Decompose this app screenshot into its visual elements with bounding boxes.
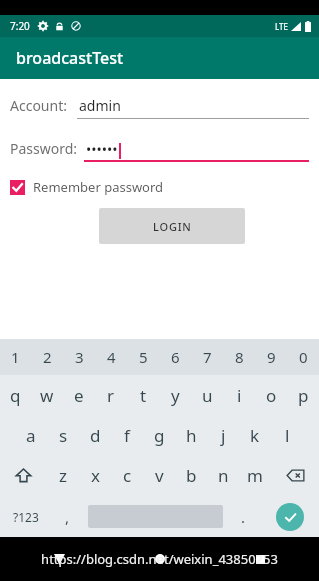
button[interactable]: , [51, 496, 84, 537]
staticText: p [298, 384, 309, 407]
staticText: i [237, 384, 242, 407]
button[interactable]: d [79, 415, 111, 455]
staticText: h [186, 424, 197, 447]
staticText: 7:20 [10, 19, 30, 33]
button[interactable]: b [175, 455, 207, 496]
button[interactable]: 8 [223, 339, 255, 375]
button[interactable]: h [175, 415, 207, 455]
staticText: a [26, 424, 36, 447]
staticText: g [154, 424, 165, 447]
button[interactable]: Home [145, 544, 175, 574]
button[interactable]: u [191, 375, 223, 415]
button[interactable]: o [255, 375, 287, 415]
staticText: Account: [10, 96, 67, 115]
staticText: LOGIN [153, 219, 192, 234]
button[interactable]: Shift [0, 455, 47, 496]
button[interactable]: 2 [31, 339, 63, 375]
staticText: Password: [10, 139, 78, 158]
button[interactable]: m [239, 455, 271, 496]
button[interactable]: v [143, 455, 175, 496]
staticText: 1 [11, 347, 20, 367]
button[interactable]: f [111, 415, 143, 455]
button[interactable]: r [95, 375, 127, 415]
button[interactable]: . [227, 496, 260, 537]
staticText: o [266, 384, 277, 407]
staticText: d [90, 424, 101, 447]
button[interactable]: 9 [255, 339, 287, 375]
staticText: j [221, 424, 226, 447]
staticText: 4 [107, 347, 116, 367]
staticText: n [218, 464, 229, 487]
button[interactable]: 5 [127, 339, 159, 375]
staticText: b [186, 464, 197, 487]
staticText: s [59, 424, 68, 447]
button[interactable]: j [207, 415, 239, 455]
staticText: Remember password [33, 178, 164, 196]
button[interactable]: w [31, 375, 63, 415]
staticText: z [59, 464, 67, 487]
staticText: k [250, 424, 260, 447]
button[interactable]: c [111, 455, 143, 496]
button[interactable]: 3 [63, 339, 95, 375]
button[interactable]: t [127, 375, 159, 415]
staticText: ?123 [13, 509, 39, 525]
staticText: broadcastTest [16, 47, 124, 69]
staticText: •••••• [86, 140, 118, 159]
staticText: 9 [267, 347, 276, 367]
staticText: x [91, 464, 100, 487]
staticText: 6 [171, 347, 180, 367]
staticText: c [123, 464, 132, 487]
button[interactable]: Remember password [10, 178, 164, 196]
button[interactable]: q [0, 375, 31, 415]
staticText: 0 [299, 347, 308, 367]
button[interactable]: Enter [260, 496, 319, 537]
staticText: q [10, 384, 21, 407]
button[interactable]: e [63, 375, 95, 415]
staticText: r [107, 384, 115, 407]
staticText: 8 [235, 347, 244, 367]
button[interactable]: y [159, 375, 191, 415]
button[interactable]: 6 [159, 339, 191, 375]
staticText: 7 [203, 347, 212, 367]
button[interactable]: a [15, 415, 47, 455]
staticText: 5 [139, 347, 148, 367]
button[interactable]: k [239, 415, 271, 455]
button[interactable]: broadcastTest [0, 37, 319, 79]
staticText: y [171, 384, 180, 407]
staticText: m [247, 464, 263, 487]
button[interactable]: 0 [287, 339, 319, 375]
button[interactable]: x [79, 455, 111, 496]
button[interactable]: l [271, 415, 303, 455]
button[interactable]: Back [44, 544, 74, 574]
button[interactable]: n [207, 455, 239, 496]
staticText: w [40, 384, 54, 407]
button[interactable]: 4 [95, 339, 127, 375]
button[interactable]: admin [77, 91, 309, 119]
staticText: e [74, 384, 84, 407]
button[interactable]: •••••• [84, 134, 309, 162]
button[interactable]: 7 [191, 339, 223, 375]
staticText: . [241, 507, 246, 527]
staticText: admin [79, 96, 121, 115]
button[interactable]: LOGIN [99, 208, 245, 244]
staticText: u [202, 384, 213, 407]
button[interactable]: s [47, 415, 79, 455]
button[interactable]: 1 [0, 339, 31, 375]
button[interactable]: Backspace [271, 455, 319, 496]
button[interactable]: ?123 [0, 496, 51, 537]
staticText: f [124, 424, 130, 447]
staticText: https://blog.csdn.net/weixin_43850253 [41, 550, 278, 568]
button[interactable]: p [287, 375, 319, 415]
button[interactable]: z [47, 455, 79, 496]
staticText: , [65, 507, 70, 527]
button[interactable]: Recents [245, 544, 275, 574]
staticText: LTE [275, 21, 288, 32]
staticText: t [140, 384, 147, 407]
staticText: v [155, 464, 164, 487]
button[interactable]: g [143, 415, 175, 455]
button[interactable]: i [223, 375, 255, 415]
staticText: 3 [75, 347, 84, 367]
staticText: 2 [43, 347, 52, 367]
staticText: l [285, 424, 290, 447]
